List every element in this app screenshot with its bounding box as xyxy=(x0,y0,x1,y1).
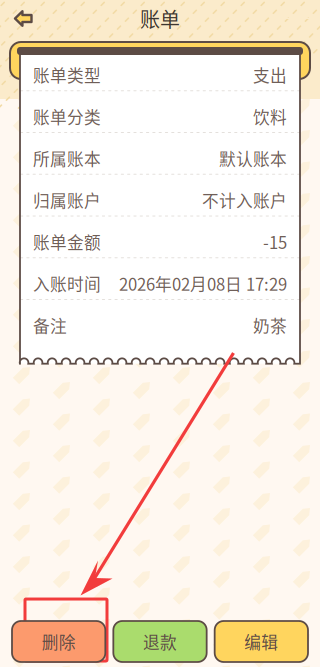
button[interactable]: 编辑 xyxy=(215,621,308,662)
staticText: 备注 xyxy=(33,313,67,337)
staticText: 归属账户 xyxy=(33,188,101,212)
staticText: 账单类型 xyxy=(33,63,101,87)
staticText: 不计入账户 xyxy=(202,188,287,212)
staticText: 删除 xyxy=(42,629,76,653)
button[interactable]: 删除 xyxy=(12,621,105,662)
staticText: 账单金额 xyxy=(33,230,101,254)
staticText: 2026年02月08日 17:29 xyxy=(119,271,287,296)
staticText: 账单分类 xyxy=(33,104,101,129)
staticText: 编辑 xyxy=(244,629,278,653)
staticText: 所属账本 xyxy=(33,146,101,170)
staticText: 饮料 xyxy=(253,104,287,129)
button[interactable]: Back xyxy=(0,0,45,37)
staticText: 支出 xyxy=(253,63,287,87)
staticText: 账单 xyxy=(140,4,180,33)
staticText: 入账时间 xyxy=(33,271,101,296)
staticText: 奶茶 xyxy=(253,313,287,337)
button[interactable]: 退款 xyxy=(113,621,207,662)
staticText: -15 xyxy=(263,230,287,254)
staticText: 默认账本 xyxy=(219,146,287,170)
staticText: 退款 xyxy=(143,629,177,653)
